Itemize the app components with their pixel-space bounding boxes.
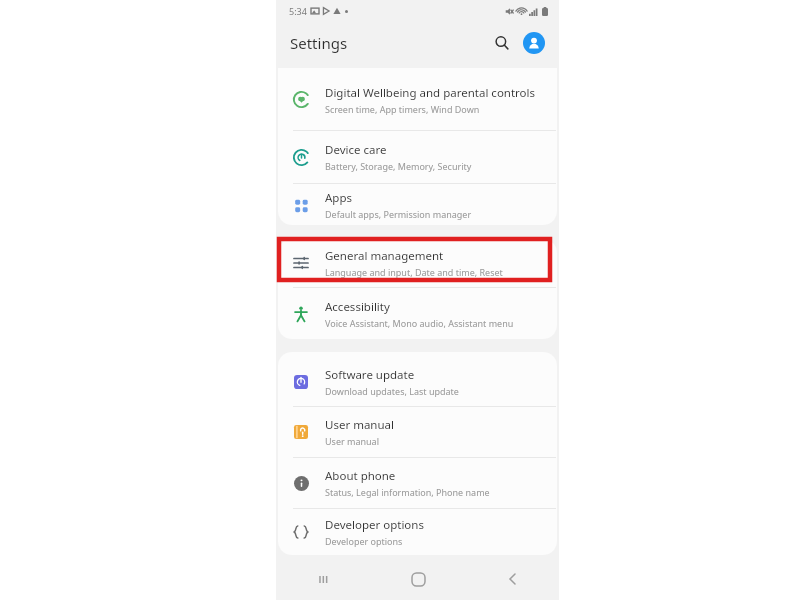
button[interactable]: Software update — [278, 358, 557, 406]
staticText: Battery, Storage, Memory, Security — [325, 160, 472, 172]
button[interactable]: Search — [489, 30, 515, 56]
button[interactable]: Digital Wellbeing and parental controls — [278, 68, 557, 130]
button[interactable]: Device care — [278, 131, 557, 183]
staticText: About phone — [325, 468, 396, 484]
staticText: Settings — [290, 33, 348, 53]
staticText: Digital Wellbeing and parental controls — [325, 85, 536, 101]
button[interactable]: Accessibility — [278, 288, 557, 339]
button[interactable]: About phone — [278, 458, 557, 508]
button[interactable]: General management — [278, 239, 557, 287]
staticText: Software update — [325, 367, 415, 383]
staticText: General management — [325, 248, 444, 264]
button[interactable]: Account — [523, 32, 545, 54]
button[interactable]: Back — [465, 558, 559, 600]
staticText: Developer options — [325, 535, 403, 547]
button[interactable]: Recent apps — [276, 558, 371, 600]
staticText: Apps — [325, 190, 353, 206]
button[interactable]: Home — [371, 558, 465, 600]
staticText: Voice Assistant, Mono audio, Assistant m… — [325, 317, 514, 329]
staticText: Device care — [325, 142, 387, 158]
button[interactable]: Developer options — [278, 509, 557, 555]
staticText: Default apps, Permission manager — [325, 208, 472, 220]
staticText: User manual — [325, 435, 379, 447]
staticText: Language and input, Date and time, Reset — [325, 266, 503, 278]
button[interactable]: User manual — [278, 407, 557, 457]
staticText: Developer options — [325, 517, 424, 533]
staticText: Download updates, Last update — [325, 385, 459, 397]
staticText: Accessibility — [325, 299, 390, 315]
staticText: User manual — [325, 417, 394, 433]
staticText: 5:34 — [289, 5, 307, 17]
staticText: Status, Legal information, Phone name — [325, 486, 490, 498]
staticText: Screen time, App timers, Wind Down — [325, 103, 480, 115]
button[interactable]: Apps — [278, 184, 557, 225]
